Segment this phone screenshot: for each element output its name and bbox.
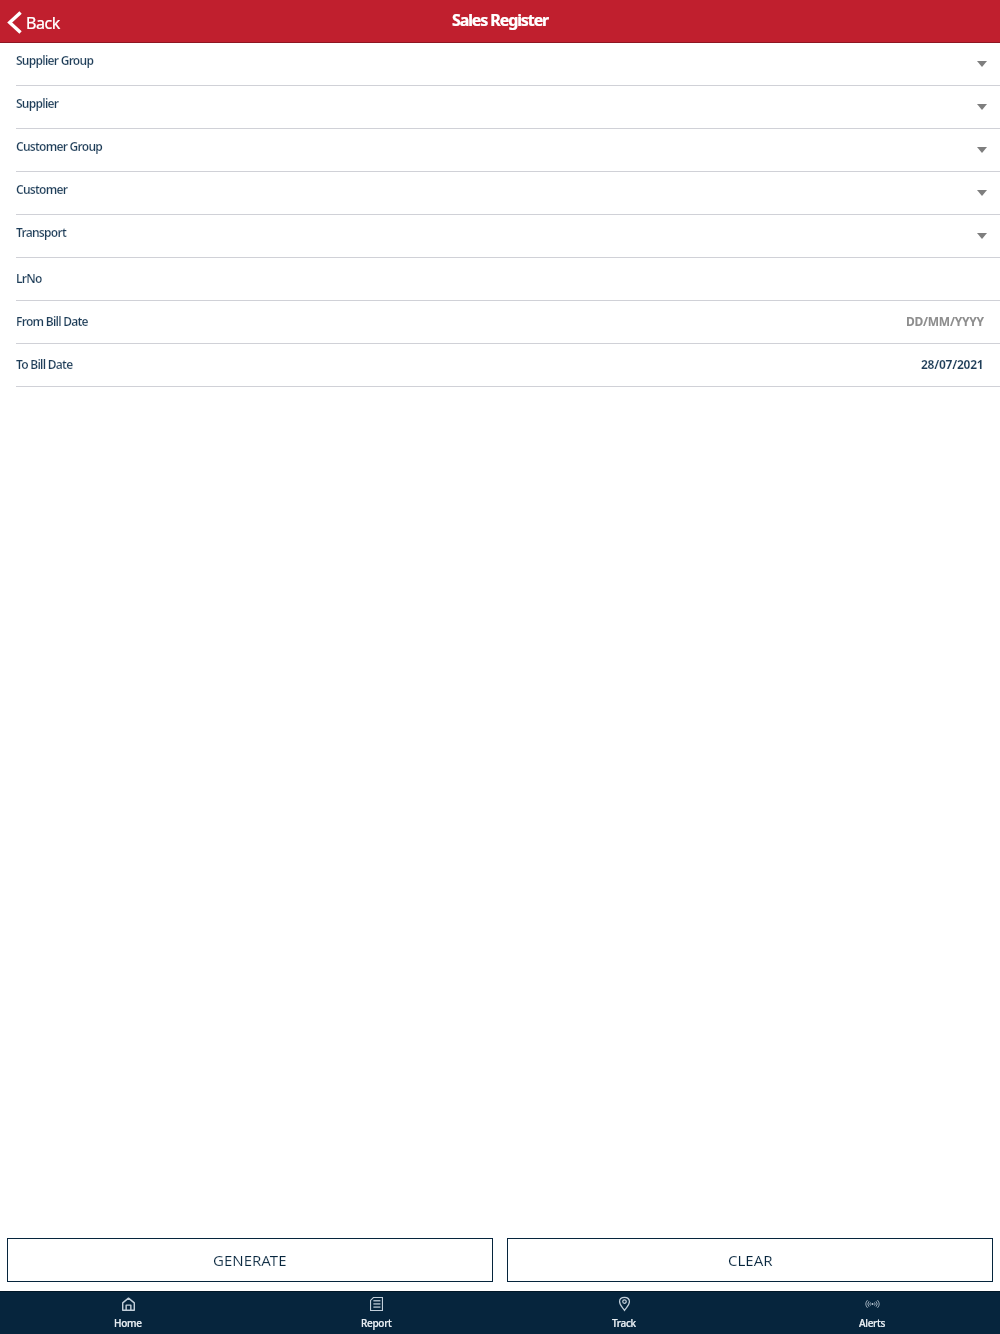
staticText: Back	[26, 12, 61, 34]
staticText: Transport	[16, 224, 67, 240]
staticText: From Bill Date	[16, 313, 88, 329]
staticText: Customer	[16, 181, 68, 197]
button[interactable]: CLEAR	[507, 1238, 993, 1282]
button[interactable]: Supplier Group	[0, 43, 1000, 86]
staticText: Supplier Group	[16, 52, 94, 68]
staticText: DD/MM/YYYY	[906, 313, 984, 329]
button[interactable]: From Bill Date	[0, 301, 1000, 344]
button[interactable]: Report	[252, 1291, 500, 1334]
staticText: Home	[114, 1316, 142, 1330]
staticText: Alerts	[859, 1316, 886, 1330]
button[interactable]: Supplier	[0, 86, 1000, 129]
other: Open Supplier	[977, 104, 987, 110]
button[interactable]: Track	[500, 1291, 748, 1334]
button[interactable]: Transport	[0, 215, 1000, 258]
staticText: Customer Group	[16, 138, 103, 154]
button[interactable]: Alerts	[748, 1291, 996, 1334]
button[interactable]: To Bill Date	[0, 344, 1000, 387]
other: Open Transport	[977, 233, 987, 239]
other: Open Customer	[977, 190, 987, 196]
button[interactable]: Customer	[0, 172, 1000, 215]
staticText: Report	[361, 1316, 392, 1330]
other: Open Supplier Group	[977, 61, 987, 67]
other: Open Customer Group	[977, 147, 987, 153]
staticText: 28/07/2021	[921, 356, 984, 372]
button[interactable]: GENERATE	[7, 1238, 493, 1282]
button[interactable]: Back	[0, 0, 73, 43]
staticText: Sales Register	[452, 9, 549, 31]
staticText: Supplier	[16, 95, 59, 111]
button[interactable]: Customer Group	[0, 129, 1000, 172]
button[interactable]: Home	[4, 1291, 252, 1334]
staticText: Track	[612, 1316, 636, 1330]
staticText: To Bill Date	[16, 356, 73, 372]
other: Back	[8, 12, 21, 33]
button[interactable]: LrNo	[0, 258, 1000, 301]
staticText: LrNo	[16, 270, 42, 286]
staticText: GENERATE	[213, 1250, 287, 1270]
staticText: CLEAR	[728, 1250, 773, 1270]
